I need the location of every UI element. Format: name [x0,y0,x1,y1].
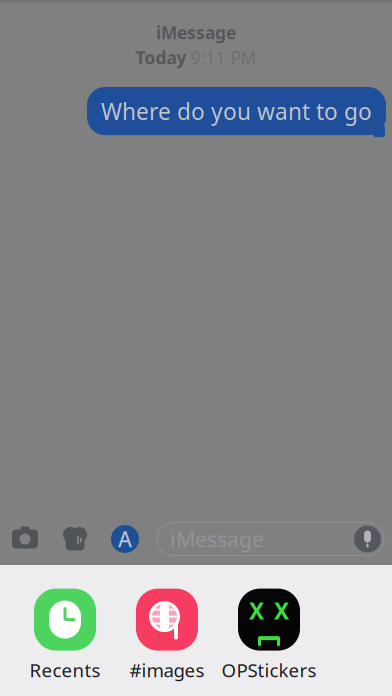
staticText: X [274,596,289,626]
staticText: iMessage [170,525,264,553]
staticText: iMessage [156,21,236,44]
staticText: #images [129,658,204,682]
button[interactable]: iMessage [157,522,384,555]
button[interactable]: iMessage Apps [100,516,150,562]
staticText: 9:11 PM [190,46,256,69]
button[interactable]: Recents [14,589,116,682]
staticText: Where do you want to go [101,96,372,126]
staticText: A [118,525,132,553]
staticText: Today [135,46,186,69]
staticText: X [249,596,264,626]
button[interactable]: Camera [0,516,50,562]
staticText: OPStickers [221,658,316,682]
staticText: Recents [29,658,100,682]
button[interactable]: X [218,589,320,682]
button[interactable]: #images [116,589,218,682]
button[interactable]: Digital Touch [50,516,100,562]
